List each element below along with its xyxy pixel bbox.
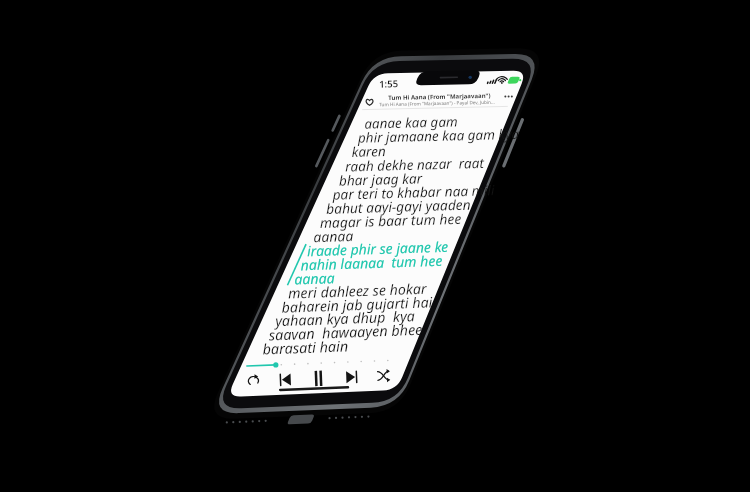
button[interactable]: Lyrics player screen — [0, 0, 750, 492]
